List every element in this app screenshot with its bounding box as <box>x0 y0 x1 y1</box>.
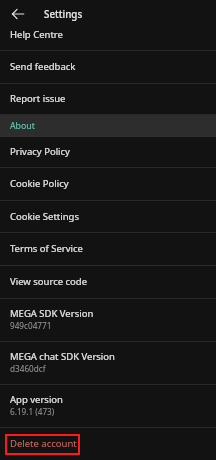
button[interactable]: Cookie Policy <box>0 168 216 201</box>
staticText: Cookie Policy <box>10 177 69 190</box>
button[interactable]: Back <box>6 2 30 26</box>
staticText: d3460dcf <box>10 363 46 374</box>
staticText: Send feedback <box>10 60 76 73</box>
staticText: 949c04771 <box>10 320 52 331</box>
button[interactable]: MEGA SDK Version <box>0 299 216 342</box>
staticText: Cookie Settings <box>10 210 79 223</box>
staticText: About <box>10 120 35 132</box>
button[interactable]: Report issue <box>0 84 216 115</box>
staticText: Report issue <box>10 92 66 105</box>
button[interactable]: App version <box>0 385 216 428</box>
button[interactable]: Send feedback <box>0 51 216 84</box>
button[interactable]: Delete account <box>0 428 216 460</box>
staticText: MEGA chat SDK Version <box>10 350 115 363</box>
button[interactable]: Help Centre <box>0 19 216 51</box>
button[interactable]: Cookie Settings <box>0 201 216 233</box>
staticText: App version <box>10 393 63 406</box>
button[interactable]: MEGA chat SDK Version <box>0 342 216 385</box>
button[interactable]: Terms of Service <box>0 233 216 266</box>
staticText: 6.19.1 (473) <box>10 406 55 417</box>
button[interactable]: About <box>0 115 216 137</box>
staticText: Help Centre <box>10 28 63 41</box>
button[interactable]: Privacy Policy <box>0 137 216 168</box>
button[interactable]: View source code <box>0 266 216 299</box>
staticText: Delete account <box>10 437 77 450</box>
staticText: Privacy Policy <box>10 145 70 158</box>
staticText: Settings <box>44 8 83 21</box>
staticText: MEGA SDK Version <box>10 307 94 320</box>
staticText: View source code <box>10 275 88 288</box>
staticText: Terms of Service <box>10 242 83 255</box>
